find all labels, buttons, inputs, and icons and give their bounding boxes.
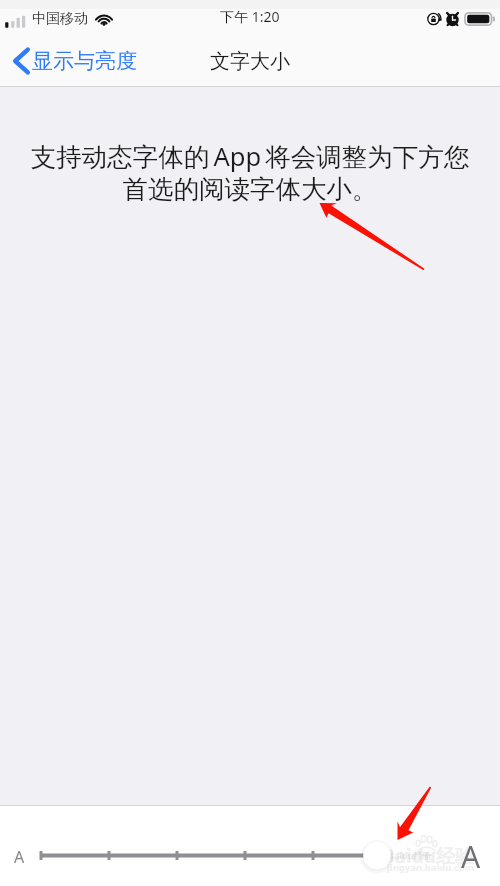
staticText: 显示与亮度 (32, 48, 137, 74)
staticText: Baidu经验 (382, 843, 475, 869)
staticText: A (461, 836, 481, 877)
staticText: 下午 1:20 (220, 7, 280, 26)
staticText: jingyan.baidu.com (387, 861, 475, 874)
button[interactable]: 文字大小滑块 (0, 806, 500, 886)
staticText: A (14, 846, 25, 868)
staticText: 支持动态字体的 App 将会调整为下方您 首选的阅读字体大小。 (6, 139, 494, 205)
staticText: 文字大小 (210, 49, 290, 74)
staticText: Baidu经验 (388, 849, 432, 861)
staticText: 中国移动 (32, 10, 88, 28)
button[interactable]: 返回 显示与亮度 (0, 44, 145, 78)
